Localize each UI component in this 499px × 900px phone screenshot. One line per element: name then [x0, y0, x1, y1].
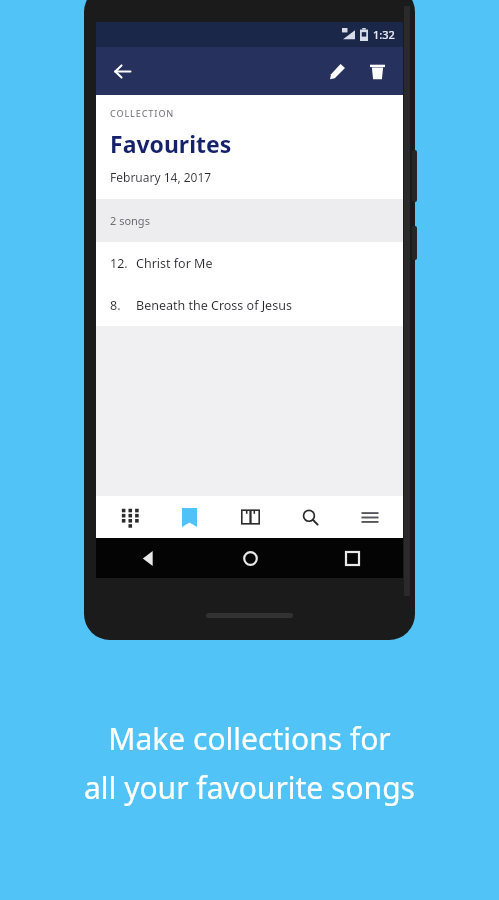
- button[interactable]: Delete: [357, 51, 397, 91]
- button[interactable]: Search: [283, 496, 337, 538]
- button[interactable]: Home: [233, 541, 267, 575]
- staticText: COLLECTION: [110, 107, 175, 119]
- staticText: Christ for Me: [136, 255, 213, 272]
- staticText: 1:32: [373, 27, 395, 42]
- staticText: Favourites: [110, 128, 232, 159]
- button[interactable]: Recent apps: [335, 541, 369, 575]
- staticText: February 14, 2017: [110, 169, 212, 185]
- button[interactable]: Menu: [343, 496, 397, 538]
- button[interactable]: Back: [131, 541, 165, 575]
- staticText: Beneath the Cross of Jesus: [136, 297, 292, 314]
- button[interactable]: Songbook: [223, 496, 277, 538]
- button[interactable]: Keypad: [102, 496, 156, 538]
- button[interactable]: Collections: [162, 496, 216, 538]
- button[interactable]: 8.: [96, 284, 403, 326]
- staticText: Make collections for: [108, 718, 391, 759]
- staticText: all your favourite songs: [84, 767, 415, 808]
- button[interactable]: Edit: [317, 51, 357, 91]
- button[interactable]: 12.: [96, 242, 403, 284]
- button[interactable]: Back: [102, 51, 142, 91]
- staticText: 2 songs: [110, 213, 150, 228]
- staticText: 8.: [110, 297, 121, 314]
- staticText: 12.: [110, 255, 128, 272]
